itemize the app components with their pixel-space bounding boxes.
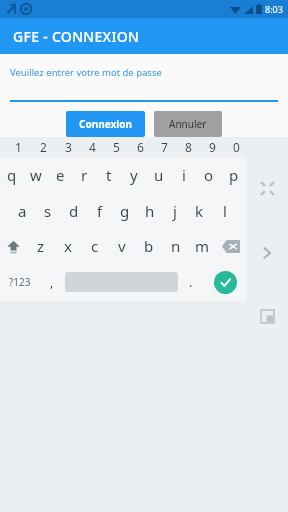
button[interactable]: 8 (176, 137, 200, 157)
button[interactable]: 0 (224, 137, 248, 157)
button[interactable]: 6 (128, 137, 152, 157)
staticText: a (18, 201, 27, 221)
button[interactable]: 9 (200, 137, 224, 157)
staticText: s (44, 201, 52, 221)
staticText: 4 (89, 139, 96, 155)
button[interactable]: 1 (6, 137, 31, 157)
button[interactable]: Shift (0, 229, 27, 263)
button[interactable]: p (221, 157, 246, 193)
button[interactable]: Floating keyboard (252, 301, 282, 331)
staticText: 3 (65, 139, 72, 155)
button[interactable]: g (112, 193, 137, 229)
button[interactable]: Next (252, 238, 282, 268)
button[interactable]: Enter (214, 271, 237, 294)
button[interactable]: v (108, 229, 135, 263)
button[interactable]: m (189, 229, 216, 263)
button[interactable]: o (196, 157, 221, 193)
staticText: u (154, 165, 164, 185)
staticText: 0 (233, 139, 240, 155)
staticText: k (195, 201, 204, 221)
button[interactable]: 3 (56, 137, 80, 157)
button[interactable]: . (178, 263, 204, 301)
staticText: w (30, 165, 42, 185)
staticText: ?123 (9, 275, 31, 289)
staticText: l (223, 201, 227, 221)
staticText: t (106, 165, 112, 185)
staticText: r (81, 165, 88, 185)
staticText: c (91, 236, 99, 256)
staticText: 8 (185, 139, 192, 155)
staticText: Veuillez entrer votre mot de passe (10, 66, 162, 79)
button[interactable]: Annuler (154, 111, 222, 137)
staticText: n (171, 236, 181, 256)
button[interactable]: u (146, 157, 171, 193)
button[interactable]: , (39, 263, 65, 301)
button[interactable]: q (0, 157, 24, 193)
button[interactable]: t (96, 157, 121, 193)
button[interactable]: s (35, 193, 61, 229)
staticText: , (50, 273, 54, 291)
button[interactable]: b (135, 229, 162, 263)
button[interactable]: w (24, 157, 48, 193)
staticText: . (189, 273, 193, 291)
button[interactable]: Backspace (216, 229, 246, 263)
staticText: 8:03 (265, 3, 283, 15)
button[interactable]: x (54, 229, 81, 263)
button[interactable]: 2 (31, 137, 56, 157)
staticText: m (195, 236, 210, 256)
staticText: z (37, 236, 45, 256)
button[interactable]: i (171, 157, 196, 193)
staticText: j (173, 201, 177, 221)
button[interactable]: d (61, 193, 87, 229)
staticText: Connexion (79, 117, 132, 131)
staticText: 6 (137, 139, 144, 155)
staticText: Annuler (169, 117, 207, 131)
staticText: GFE - CONNEXION (13, 27, 140, 46)
button[interactable]: ?123 (0, 263, 39, 301)
staticText: g (120, 201, 130, 221)
button[interactable]: r (72, 157, 96, 193)
staticText: 9 (209, 139, 216, 155)
staticText: f (97, 201, 103, 221)
staticText: 1 (15, 139, 22, 155)
button[interactable]: Connexion (66, 111, 145, 137)
staticText: v (118, 236, 126, 256)
staticText: o (204, 165, 214, 185)
staticText: x (64, 236, 72, 256)
button[interactable]: l (212, 193, 237, 229)
staticText: e (56, 165, 65, 185)
button[interactable]: a (9, 193, 35, 229)
staticText: 2 (40, 139, 47, 155)
staticText: 7 (161, 139, 168, 155)
button[interactable]: Resize keyboard (252, 173, 282, 203)
button[interactable]: 5 (104, 137, 128, 157)
button[interactable]: 4 (80, 137, 104, 157)
staticText: d (69, 201, 79, 221)
button[interactable]: k (187, 193, 212, 229)
button[interactable]: 7 (152, 137, 176, 157)
staticText: q (7, 165, 17, 185)
staticText: i (182, 165, 186, 185)
button[interactable]: f (87, 193, 112, 229)
button[interactable]: n (162, 229, 189, 263)
button[interactable]: h (137, 193, 162, 229)
staticText: 5 (113, 139, 120, 155)
button[interactable]: GFE - CONNEXION (0, 18, 288, 54)
staticText: p (229, 165, 239, 185)
staticText: h (145, 201, 155, 221)
button[interactable]: c (81, 229, 108, 263)
button[interactable]: y (121, 157, 146, 193)
button[interactable]: e (48, 157, 72, 193)
button[interactable]: j (162, 193, 187, 229)
button[interactable]: z (27, 229, 54, 263)
staticText: b (144, 236, 154, 256)
staticText: y (130, 165, 138, 185)
